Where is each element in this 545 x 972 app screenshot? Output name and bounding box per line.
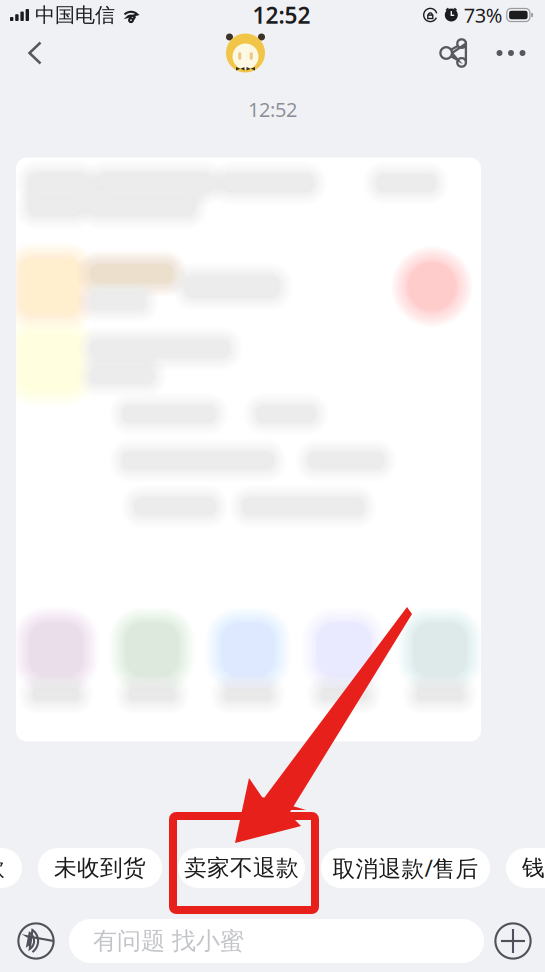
staticText: 12:52	[248, 96, 297, 123]
button[interactable]: 退款	[0, 848, 22, 888]
button[interactable]: 更多功能	[494, 922, 532, 960]
button[interactable]: 语音输入	[17, 922, 55, 960]
staticText: 12:52	[252, 0, 310, 30]
button[interactable]: 返回	[14, 29, 56, 77]
staticText: 退款	[0, 854, 5, 882]
staticText: 未收到货	[54, 854, 146, 882]
staticText: 有问题 找小蜜	[93, 926, 244, 956]
button[interactable]: 卖家不退款	[178, 848, 305, 888]
button[interactable]: 未收到货	[38, 848, 162, 888]
staticText: 中国电信	[35, 3, 115, 27]
button[interactable]: 更多	[493, 29, 529, 77]
button[interactable]: 有问题 找小蜜	[69, 919, 484, 963]
button[interactable]: 分享	[435, 29, 471, 77]
button[interactable]: 取消退款/售后	[321, 848, 490, 888]
button[interactable]: 钱款去向	[506, 848, 545, 888]
staticText: 73%	[464, 2, 503, 28]
staticText: 取消退款/售后	[332, 853, 478, 883]
staticText: 钱款去向	[522, 854, 545, 882]
staticText: 卖家不退款	[184, 854, 299, 882]
